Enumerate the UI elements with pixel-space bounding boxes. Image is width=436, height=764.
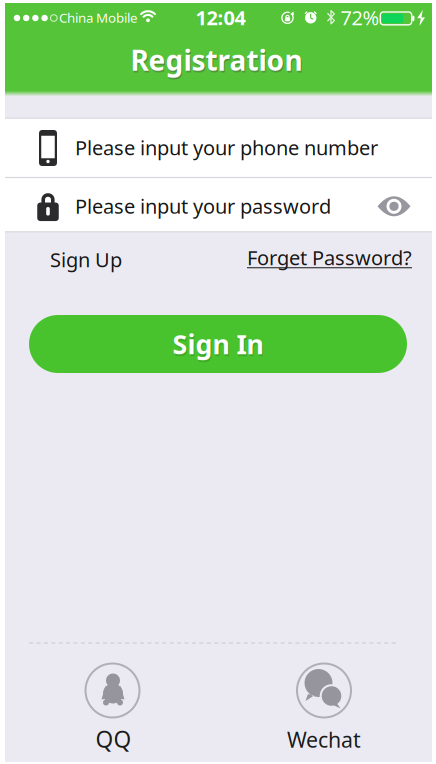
staticText: Forget Password? <box>247 244 412 271</box>
staticText: Registration <box>131 43 303 80</box>
staticText: Sign In <box>173 328 264 363</box>
staticText: Please input your phone number <box>75 134 378 161</box>
staticText: Sign In <box>172 326 263 362</box>
staticText: China Mobile <box>59 9 138 26</box>
staticText: Sign Up <box>50 246 122 273</box>
staticText: Please input your password <box>75 193 331 219</box>
staticText: QQ <box>95 724 131 754</box>
staticText: 72% <box>340 4 379 31</box>
staticText: Wechat <box>287 725 361 754</box>
staticText: 12:04 <box>195 4 245 31</box>
staticText: Registration <box>130 41 302 79</box>
